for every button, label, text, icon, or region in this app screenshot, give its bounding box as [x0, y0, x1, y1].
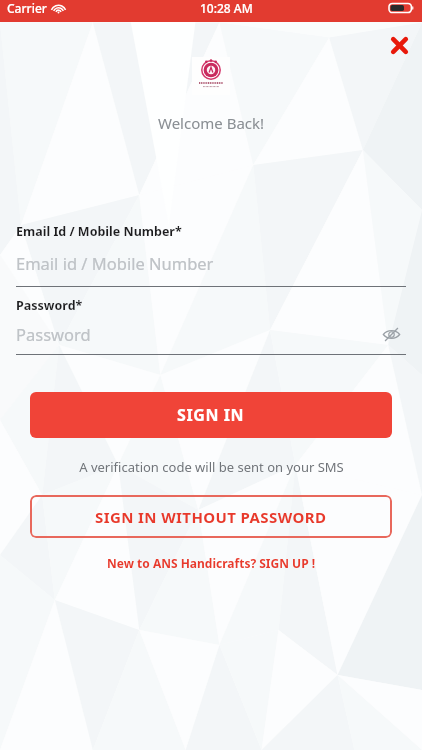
staticText: SIGN IN — [177, 404, 245, 426]
button[interactable]: Email id / Mobile Number — [16, 240, 406, 286]
staticText: Carrier — [7, 0, 47, 16]
staticText: Password* — [16, 297, 83, 314]
button[interactable]: Password — [16, 314, 406, 354]
button[interactable]: Show password — [376, 319, 406, 349]
staticText: SIGN IN WITHOUT PASSWORD — [95, 507, 327, 527]
button[interactable]: SIGN IN — [30, 392, 392, 438]
staticText: A verification code will be sent on your… — [79, 458, 344, 476]
button[interactable]: Close — [382, 28, 416, 62]
staticText: Password — [16, 323, 91, 345]
staticText: Email Id / Mobile Number* — [16, 223, 182, 240]
staticText: Email id / Mobile Number — [16, 252, 214, 274]
button[interactable]: New to ANS Handicrafts? SIGN UP ! — [99, 552, 324, 574]
staticText: 10:28 AM — [200, 0, 253, 16]
staticText: Welcome Back! — [158, 113, 265, 133]
button[interactable]: SIGN IN WITHOUT PASSWORD — [30, 495, 392, 538]
staticText: New to ANS Handicrafts? SIGN UP ! — [107, 555, 316, 571]
